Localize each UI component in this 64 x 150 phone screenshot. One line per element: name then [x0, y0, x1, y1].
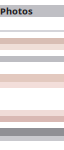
staticText: Photos [0, 5, 33, 17]
